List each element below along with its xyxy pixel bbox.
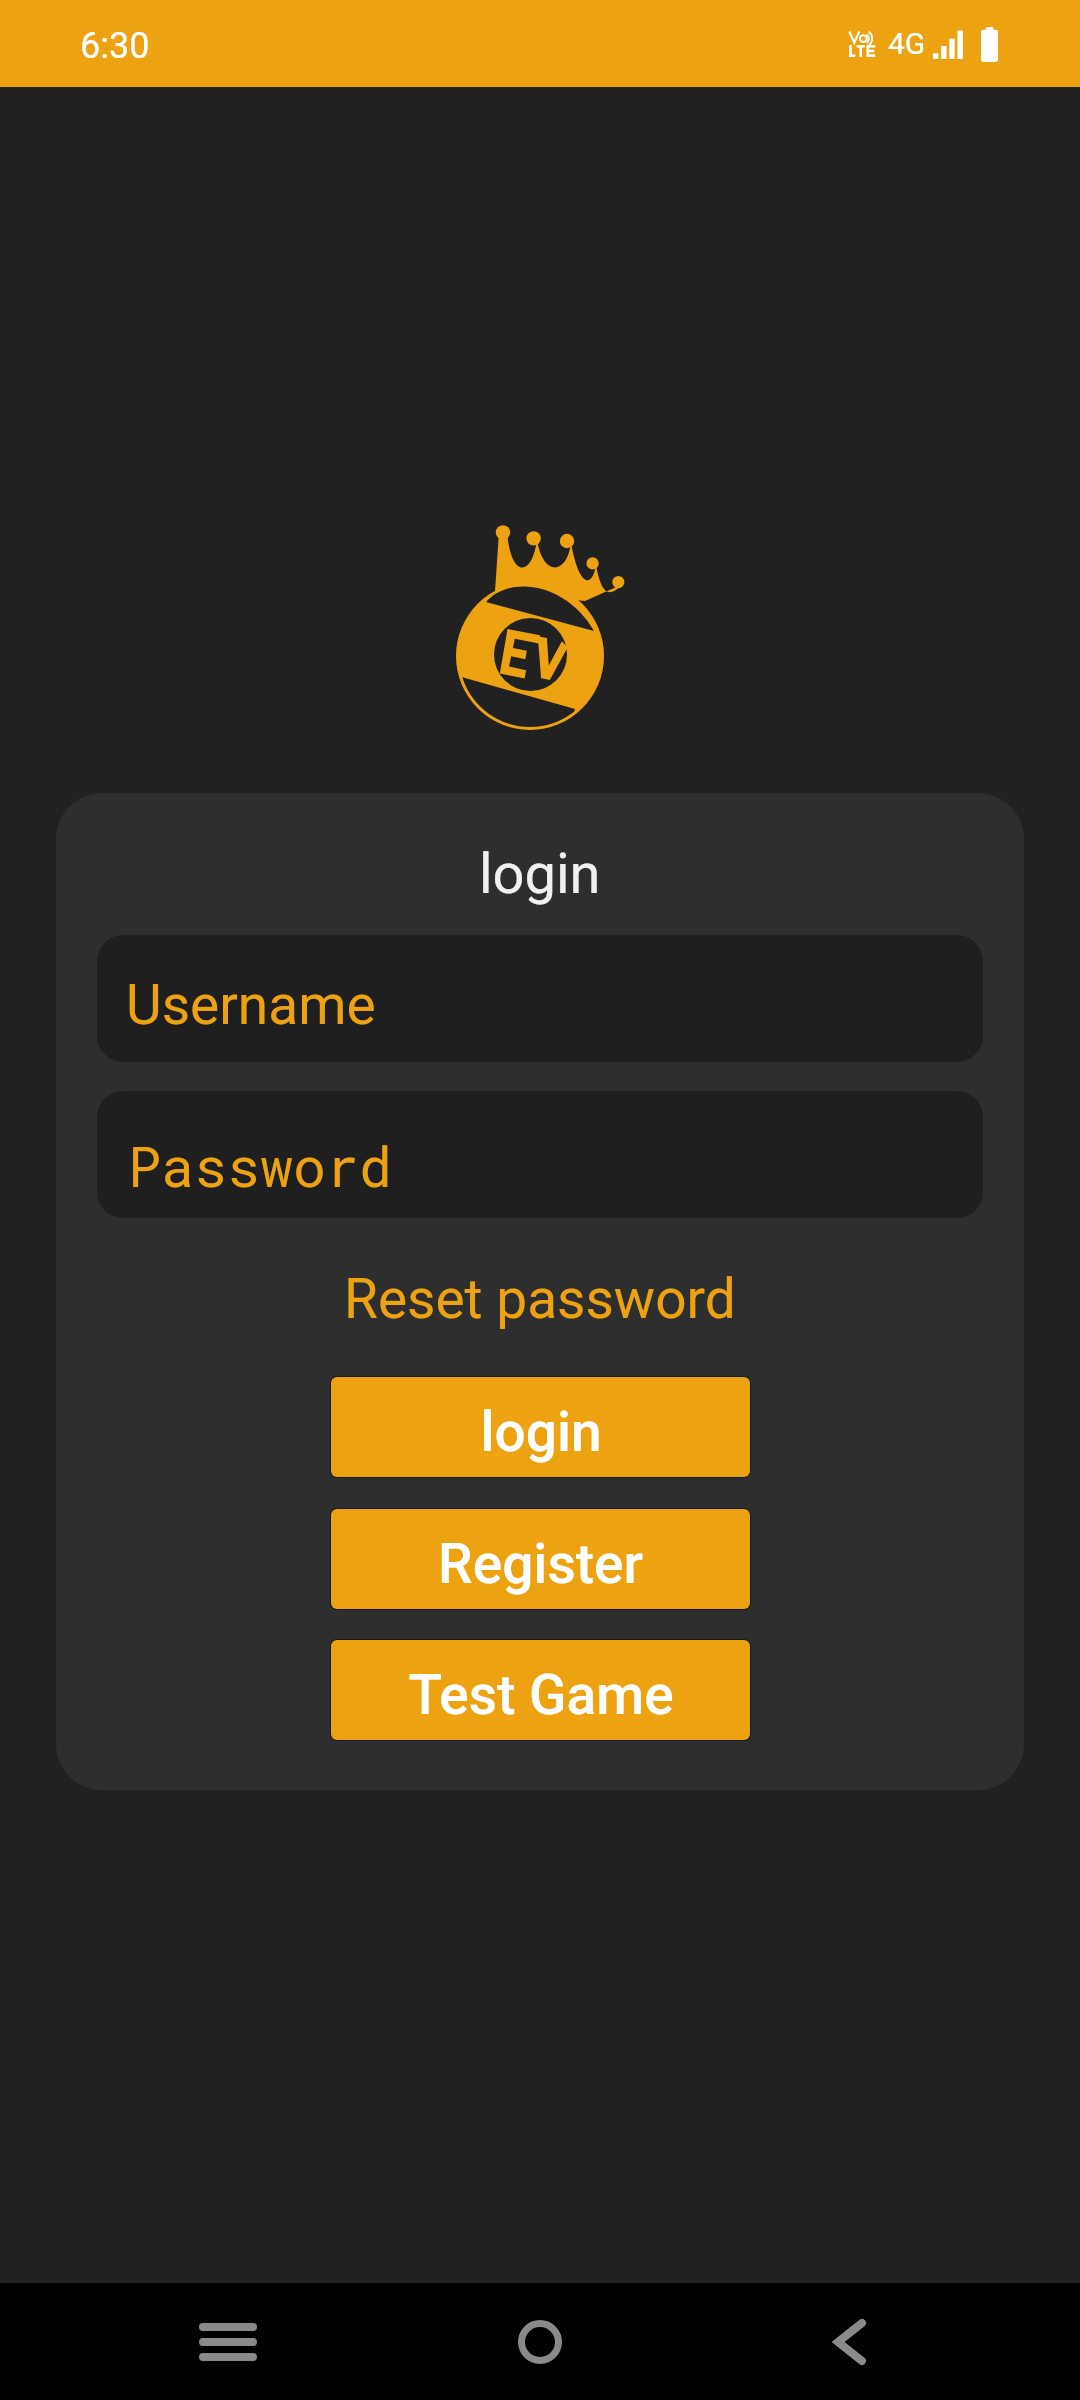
staticText: Register [438,1532,643,1596]
staticText: login [480,1400,602,1464]
button[interactable]: Password [97,1091,983,1218]
button[interactable]: Register [331,1509,750,1609]
button[interactable]: Home [476,2283,604,2400]
button[interactable]: Test Game [331,1640,750,1740]
staticText: 4G [888,26,926,61]
button[interactable]: Reset password [344,1267,736,1331]
staticText: Test Game [408,1663,674,1727]
button[interactable]: Back [786,2283,914,2400]
staticText: login [479,841,601,907]
staticText: 6:30 [80,25,150,67]
staticText: Username [126,973,376,1037]
button[interactable]: Username [97,935,983,1062]
staticText: Password [128,1129,393,1202]
button[interactable]: Recent apps [164,2283,292,2400]
button[interactable]: login [331,1377,750,1477]
